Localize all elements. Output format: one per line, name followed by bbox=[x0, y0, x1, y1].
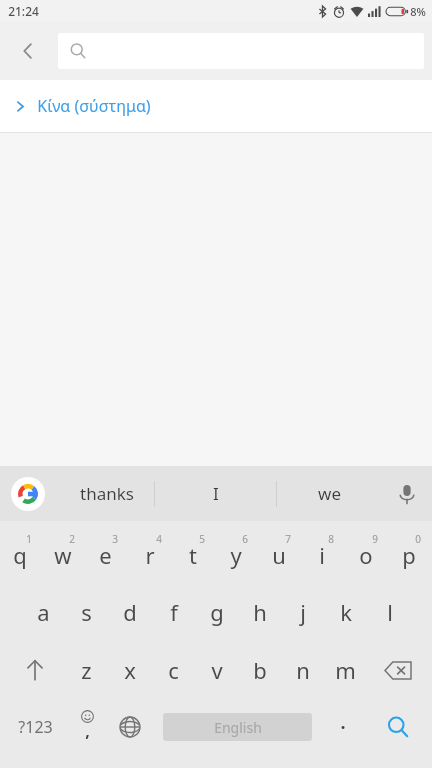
button[interactable]: Back bbox=[6, 29, 50, 73]
staticText: m bbox=[335, 655, 356, 685]
staticText: p bbox=[402, 540, 416, 570]
button[interactable]: . bbox=[322, 699, 364, 755]
staticText: d bbox=[123, 597, 137, 627]
button[interactable]: n bbox=[281, 641, 324, 699]
staticText: thanks bbox=[80, 482, 134, 505]
staticText: ?123 bbox=[18, 716, 53, 738]
button[interactable]: o bbox=[344, 521, 387, 583]
staticText: a bbox=[37, 597, 50, 627]
staticText: 6 bbox=[242, 532, 248, 546]
staticText: q bbox=[13, 540, 27, 570]
staticText: j bbox=[300, 597, 306, 627]
button[interactable]: s bbox=[65, 583, 108, 641]
staticText: t bbox=[189, 540, 197, 570]
staticText: 2 bbox=[69, 532, 75, 546]
staticText: 7 bbox=[285, 532, 291, 546]
button[interactable]: r bbox=[128, 521, 171, 583]
staticText: o bbox=[359, 540, 373, 570]
button[interactable]: I bbox=[155, 466, 276, 521]
button[interactable]: Search bbox=[372, 699, 424, 755]
staticText: v bbox=[211, 655, 223, 685]
staticText: x bbox=[124, 655, 136, 685]
button[interactable]: j bbox=[281, 583, 324, 641]
button[interactable]: c bbox=[152, 641, 195, 699]
button[interactable]: Google bbox=[11, 477, 45, 511]
staticText: 0 bbox=[415, 532, 421, 546]
staticText: 9 bbox=[372, 532, 378, 546]
button[interactable]: m bbox=[324, 641, 367, 699]
button[interactable]: thanks bbox=[60, 466, 154, 521]
staticText: 8% bbox=[410, 4, 426, 19]
button[interactable]: g bbox=[195, 583, 238, 641]
staticText: e bbox=[99, 540, 112, 570]
staticText: 1 bbox=[26, 532, 32, 546]
staticText: s bbox=[81, 597, 92, 627]
staticText: , bbox=[85, 720, 90, 742]
staticText: 3 bbox=[112, 532, 118, 546]
button[interactable]: v bbox=[195, 641, 238, 699]
button[interactable]: k bbox=[324, 583, 367, 641]
staticText: l bbox=[387, 597, 393, 627]
staticText: n bbox=[296, 655, 310, 685]
staticText: h bbox=[253, 597, 267, 627]
button[interactable]: t bbox=[171, 521, 214, 583]
staticText: 5 bbox=[199, 532, 205, 546]
button[interactable]: we bbox=[277, 466, 381, 521]
button[interactable]: l bbox=[368, 583, 411, 641]
staticText: r bbox=[145, 540, 155, 570]
button[interactable]: p bbox=[387, 521, 430, 583]
button[interactable]: Shift bbox=[10, 641, 60, 699]
staticText: 8 bbox=[328, 532, 334, 546]
button[interactable]: a bbox=[22, 583, 65, 641]
button[interactable]: Voice input bbox=[382, 466, 432, 521]
button[interactable]: Emoji bbox=[66, 699, 108, 755]
staticText: z bbox=[81, 655, 92, 685]
staticText: f bbox=[170, 597, 178, 627]
button[interactable]: u bbox=[257, 521, 300, 583]
button[interactable]: q bbox=[0, 521, 41, 583]
button[interactable]: h bbox=[238, 583, 281, 641]
staticText: 4 bbox=[156, 532, 162, 546]
button[interactable]: w bbox=[41, 521, 84, 583]
button[interactable]: f bbox=[152, 583, 195, 641]
button[interactable]: d bbox=[108, 583, 151, 641]
button[interactable]: ?123 bbox=[8, 699, 62, 755]
button[interactable] bbox=[58, 33, 424, 69]
button[interactable]: Κίνα (σύστημα) bbox=[0, 80, 432, 132]
button[interactable]: b bbox=[238, 641, 281, 699]
staticText: Κίνα (σύστημα) bbox=[37, 95, 151, 117]
button[interactable]: Backspace bbox=[373, 641, 423, 699]
button[interactable]: e bbox=[84, 521, 127, 583]
button[interactable]: y bbox=[214, 521, 257, 583]
staticText: c bbox=[168, 655, 179, 685]
staticText: 21:24 bbox=[8, 3, 39, 19]
staticText: I bbox=[213, 482, 219, 505]
button[interactable]: x bbox=[108, 641, 151, 699]
button[interactable]: Change keyboard language bbox=[109, 699, 151, 755]
staticText: w bbox=[54, 540, 72, 570]
staticText: . bbox=[340, 710, 346, 735]
staticText: b bbox=[253, 655, 267, 685]
staticText: y bbox=[230, 540, 242, 570]
staticText: u bbox=[272, 540, 286, 570]
button[interactable]: z bbox=[65, 641, 108, 699]
staticText: g bbox=[210, 597, 224, 627]
staticText: we bbox=[318, 482, 341, 505]
button[interactable]: English bbox=[163, 713, 312, 741]
staticText: English bbox=[214, 718, 262, 737]
staticText: k bbox=[340, 597, 352, 627]
button[interactable]: i bbox=[300, 521, 343, 583]
staticText: i bbox=[319, 540, 325, 570]
